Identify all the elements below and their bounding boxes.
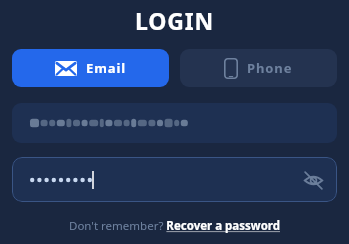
button[interactable]: Email xyxy=(12,49,169,87)
button[interactable]: Password field xyxy=(12,157,337,202)
button[interactable]: Don't remember? Recover a password xyxy=(63,215,287,237)
staticText: Don't remember? Recover a password xyxy=(69,218,281,234)
button[interactable]: Show password xyxy=(297,164,329,196)
staticText: Phone xyxy=(247,59,293,77)
button[interactable]: Phone xyxy=(180,49,337,87)
button[interactable]: Email address field xyxy=(12,103,337,143)
staticText: LOGIN xyxy=(135,5,214,36)
staticText: Email xyxy=(86,59,127,77)
